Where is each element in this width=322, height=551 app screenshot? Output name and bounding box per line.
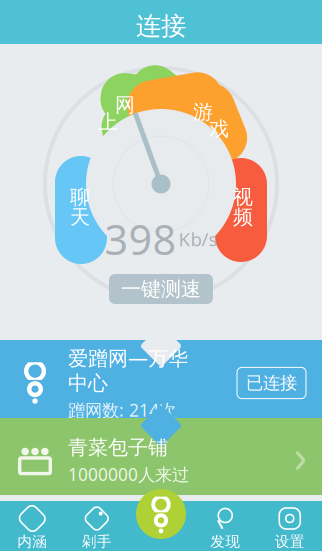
staticText: 频 xyxy=(233,205,253,229)
staticText: 一键测速 xyxy=(121,277,201,301)
staticText: 内涵 xyxy=(17,532,47,550)
staticText: 青菜包子铺 xyxy=(68,435,168,460)
staticText: 戏 xyxy=(209,117,229,141)
staticText: 已连接 xyxy=(246,372,297,394)
staticText: Kb/s xyxy=(178,227,217,251)
button[interactable]: Connect Wi-Fi xyxy=(133,486,189,542)
staticText: 蹭网数: 214次 xyxy=(68,399,176,422)
staticText: 上 xyxy=(98,110,118,134)
button[interactable]: 发现 xyxy=(193,501,257,551)
staticText: 剁手 xyxy=(82,532,112,550)
staticText: 发现 xyxy=(210,532,240,550)
staticText: 视 xyxy=(233,185,253,209)
staticText: 连接 xyxy=(136,10,186,41)
button[interactable]: 剁手 xyxy=(64,501,129,551)
staticText: 398 xyxy=(104,212,176,266)
staticText: 1000000人来过 xyxy=(68,463,189,486)
staticText: 聊 xyxy=(70,185,90,209)
staticText: 爱蹭网—万华中心 xyxy=(68,344,188,395)
staticText: 网 xyxy=(115,93,135,117)
staticText: 设置 xyxy=(275,532,305,550)
button[interactable]: 内涵 xyxy=(0,501,64,551)
button[interactable]: 一键测速 xyxy=(109,274,213,304)
button[interactable]: 设置 xyxy=(257,501,322,551)
button[interactable]: 爱蹭网—万华中心 xyxy=(0,340,322,418)
staticText: 游 xyxy=(193,100,213,124)
button[interactable]: 青菜包子铺 xyxy=(0,418,322,495)
staticText: 天 xyxy=(70,205,90,229)
